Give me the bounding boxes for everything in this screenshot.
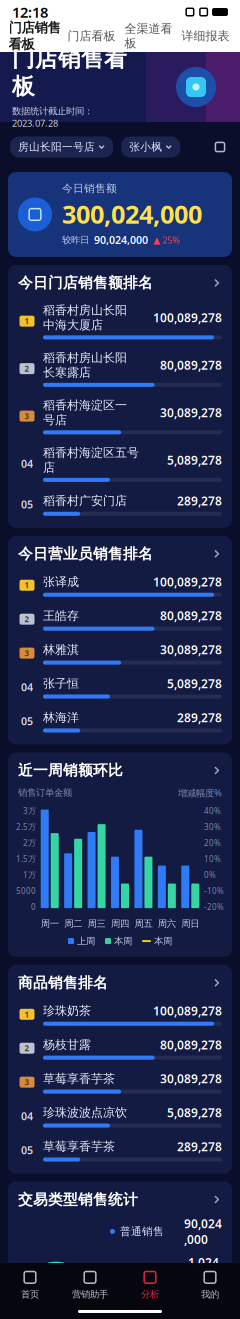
staticText: -10%	[204, 886, 224, 896]
staticText: 5,089,278	[167, 676, 222, 691]
staticText: 交易类型销售统计	[18, 1190, 138, 1208]
button[interactable]: 2	[8, 604, 232, 635]
staticText: 1	[24, 316, 29, 326]
staticText: 上周	[77, 935, 95, 947]
button[interactable]: 详细报表	[177, 25, 234, 51]
button[interactable]: 04	[8, 441, 232, 486]
staticText: 2	[24, 1043, 29, 1053]
button[interactable]: 首页	[0, 1269, 60, 1300]
button[interactable]: Filter	[210, 137, 230, 157]
button[interactable]: 05	[8, 489, 232, 520]
staticText: 今日门店销售额排名	[18, 274, 153, 292]
staticText: 林雅淇	[43, 642, 79, 657]
button[interactable]: 3	[8, 638, 232, 669]
staticText: ▲ 25%	[153, 234, 180, 246]
staticText: 林海洋	[43, 710, 79, 725]
staticText: 本周	[154, 935, 172, 947]
staticText: 5,089,278	[167, 452, 222, 468]
staticText: 稻香村房山长阳长寒露店	[43, 350, 127, 380]
staticText: 今日销售额	[62, 182, 117, 195]
staticText: 门店看板	[67, 29, 115, 43]
button[interactable]: 我的	[180, 1269, 240, 1300]
staticText: 分析	[141, 1289, 159, 1300]
button[interactable]: 2	[8, 1033, 232, 1064]
button[interactable]: 门店看板	[63, 25, 120, 51]
staticText: 2	[24, 614, 29, 624]
staticText: 本周	[114, 935, 132, 947]
button[interactable]: 2	[8, 346, 232, 391]
staticText: 12:18	[12, 2, 48, 22]
staticText: 2.5万	[16, 822, 36, 832]
staticText: 草莓享香芋茶	[43, 1071, 115, 1086]
button[interactable]: 05	[8, 705, 232, 736]
staticText: 20%	[204, 838, 221, 848]
staticText: 04	[21, 680, 33, 694]
staticText: 05	[21, 1143, 33, 1157]
button[interactable]: 交易类型销售统计	[8, 1181, 232, 1215]
button[interactable]: 04	[8, 672, 232, 702]
staticText: 90,024,000	[184, 1215, 222, 1247]
staticText: 王皓存	[43, 608, 79, 623]
staticText: 30,089,278	[160, 405, 222, 421]
staticText: 5,089,278	[167, 1105, 222, 1120]
staticText: 门店销售看板	[8, 20, 60, 52]
staticText: 详细报表	[181, 29, 229, 43]
button[interactable]: 张小枫	[121, 136, 180, 157]
staticText: 近一周销额环比	[18, 761, 123, 779]
staticText: 90,024,000	[94, 233, 148, 247]
button[interactable]: 1	[8, 999, 232, 1030]
staticText: 储值	[120, 1303, 142, 1316]
staticText: 全渠道看板	[124, 21, 172, 51]
staticText: 2万	[23, 838, 36, 848]
button[interactable]: 近一周销额环比	[8, 752, 232, 786]
staticText: 30,089,278	[160, 1071, 222, 1087]
staticText: 3	[24, 1077, 29, 1087]
staticText: 289,278	[177, 493, 222, 509]
button[interactable]: 今日门店销售额排名	[8, 265, 232, 299]
staticText: 05	[21, 497, 33, 511]
staticText: 房山长阳一号店	[18, 140, 95, 153]
button[interactable]: 营销助手	[60, 1269, 120, 1300]
staticText: 0%	[204, 870, 216, 880]
staticText: 商品销售排名	[18, 974, 108, 992]
button[interactable]: 1	[8, 299, 232, 343]
staticText: 稻香村房山长阳中海大厦店	[43, 303, 127, 332]
staticText: 40%	[204, 806, 221, 816]
staticText: 草莓享香芋茶	[43, 1139, 115, 1154]
button[interactable]: 商品销售排名	[8, 965, 232, 999]
staticText: 稻香村海淀区一号店	[43, 398, 127, 427]
button[interactable]: 门店销售看板	[6, 16, 63, 60]
button[interactable]: 05	[8, 1135, 232, 1165]
button[interactable]: 1	[8, 570, 232, 601]
button[interactable]: 04	[8, 1101, 232, 1131]
staticText: 周六	[158, 918, 176, 929]
staticText: 3	[24, 411, 29, 421]
button[interactable]: 今日营业员销售排名	[8, 536, 232, 570]
staticText: 80,089,278	[160, 608, 222, 624]
button[interactable]: 分析	[120, 1269, 180, 1300]
staticText: 1,024,000	[188, 1254, 222, 1286]
staticText: 杨枝甘露	[43, 1037, 91, 1052]
staticText: 100,089,278	[153, 1003, 222, 1019]
button[interactable]: 3	[8, 394, 232, 438]
staticText: 张小枫	[129, 140, 162, 153]
staticText: 张子恒	[43, 676, 79, 691]
staticText: 普通销售	[120, 1225, 164, 1238]
staticText: 周三	[88, 918, 106, 929]
button[interactable]: 房山长阳一号店	[10, 136, 113, 157]
button[interactable]: 全渠道看板	[120, 17, 177, 59]
staticText: 珍珠奶茶	[43, 1003, 91, 1018]
staticText: 1	[24, 580, 29, 590]
staticText: 80,089,278	[160, 1037, 222, 1053]
staticText: 10%	[204, 854, 221, 864]
staticText: 3	[24, 648, 29, 658]
staticText: 05	[21, 714, 33, 728]
staticText: 首页	[21, 1289, 39, 1300]
staticText: 30%	[204, 822, 221, 832]
staticText: 周一	[41, 918, 59, 929]
button[interactable]: 3	[8, 1067, 232, 1098]
staticText: 门店销售看板	[12, 45, 127, 100]
staticText: -20%	[204, 902, 224, 912]
staticText: 1.5万	[16, 854, 36, 864]
